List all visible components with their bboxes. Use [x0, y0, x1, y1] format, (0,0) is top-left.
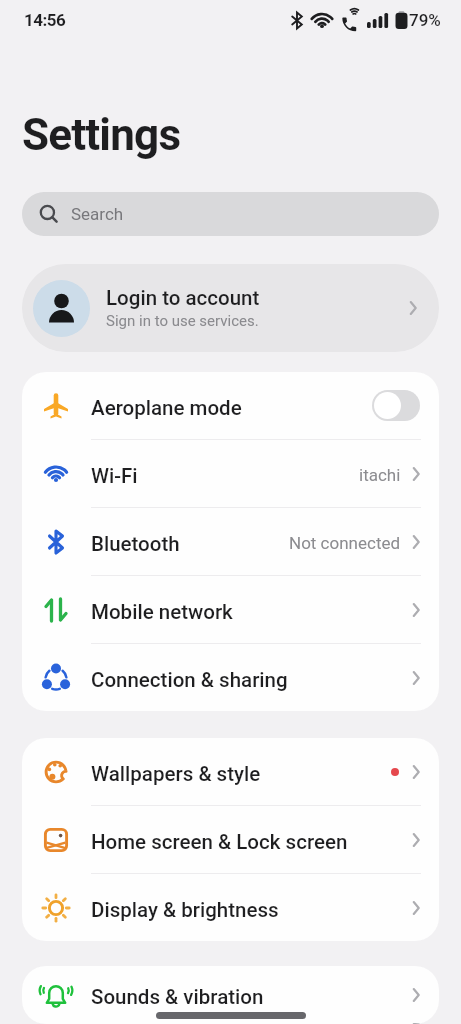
staticText: Wi-Fi [91, 464, 138, 488]
button[interactable]: Aeroplane mode [22, 372, 439, 439]
button[interactable]: Search [22, 192, 439, 236]
button[interactable]: Login to account [22, 264, 439, 352]
button[interactable]: Connection & sharing [22, 644, 439, 711]
staticText: Sign in to use services. [106, 312, 259, 330]
staticText: Wallpapers & style [91, 762, 261, 786]
button[interactable] [372, 390, 420, 421]
staticText: Mobile network [91, 600, 233, 624]
staticText: Not connected [289, 533, 401, 553]
staticText: Login to account [106, 286, 260, 310]
staticText: Bluetooth [91, 532, 180, 556]
button[interactable]: Wallpapers & style [22, 738, 439, 805]
staticText: Sounds & vibration [91, 985, 264, 1009]
button[interactable]: Bluetooth [22, 508, 439, 575]
button[interactable]: Wi-Fi [22, 440, 439, 507]
staticText: itachi [359, 465, 401, 485]
staticText: Search [71, 204, 124, 224]
button[interactable]: Home screen & Lock screen [22, 806, 439, 873]
staticText: 14:56 [24, 10, 66, 30]
staticText: Settings [22, 109, 181, 161]
staticText: Connection & sharing [91, 668, 288, 692]
staticText: 79% [409, 10, 441, 30]
button[interactable]: Sounds & vibration [22, 966, 439, 1024]
button[interactable]: Display & brightness [22, 874, 439, 941]
staticText: Home screen & Lock screen [91, 830, 348, 854]
button[interactable]: Mobile network [22, 576, 439, 643]
staticText: Display & brightness [91, 898, 279, 922]
staticText: Aeroplane mode [91, 396, 242, 420]
